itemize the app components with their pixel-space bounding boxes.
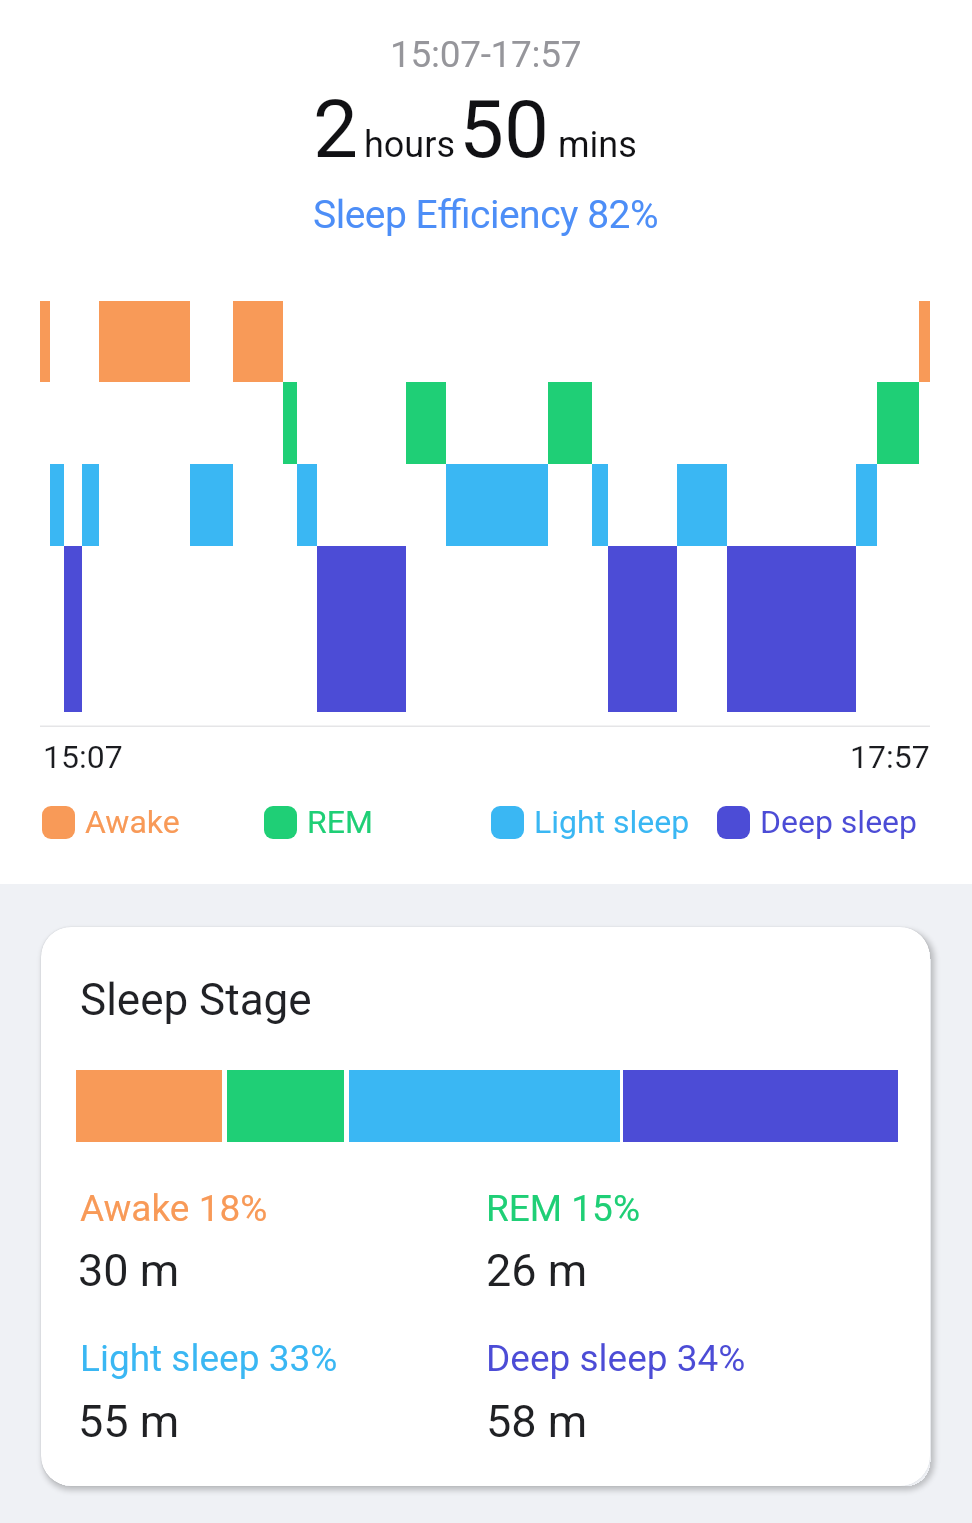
staticText: Deep sleep: [760, 803, 918, 841]
button[interactable]: Light sleep: [491, 803, 690, 841]
staticText: 2: [313, 83, 358, 177]
staticText: Deep sleep 34%: [486, 1337, 746, 1380]
staticText: Light sleep 33%: [80, 1337, 338, 1380]
button[interactable]: Deep sleep: [717, 803, 918, 841]
staticText: 26 m: [486, 1244, 588, 1297]
staticText: 15:07-17:57: [390, 33, 582, 76]
button[interactable]: Sleep Stage: [41, 927, 930, 1486]
staticText: Awake: [85, 803, 180, 841]
staticText: Sleep Efficiency 82%: [313, 192, 659, 238]
staticText: 58 m: [486, 1395, 588, 1448]
staticText: Awake 18%: [80, 1187, 268, 1230]
staticText: 15:07: [43, 738, 123, 776]
staticText: 17:57: [850, 738, 930, 776]
staticText: 50: [459, 83, 549, 177]
staticText: 30 m: [78, 1244, 180, 1297]
staticText: mins: [549, 124, 637, 166]
button[interactable]: REM: [264, 803, 373, 841]
staticText: hours: [364, 124, 455, 166]
staticText: 55 m: [78, 1395, 180, 1448]
staticText: REM 15%: [486, 1187, 640, 1230]
staticText: Sleep Stage: [80, 974, 312, 1026]
button[interactable]: Awake: [42, 803, 180, 841]
staticText: REM: [307, 803, 373, 841]
staticText: Light sleep: [534, 803, 690, 841]
